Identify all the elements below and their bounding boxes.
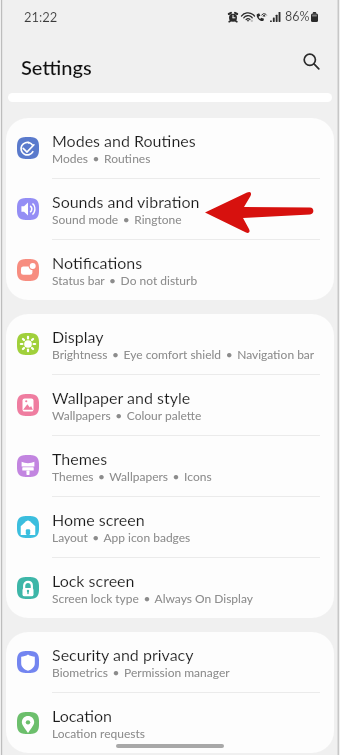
button[interactable]: Lock screen: [6, 558, 334, 618]
staticText: Lock screen: [52, 571, 135, 590]
button[interactable]: Wallpaper and style: [6, 375, 334, 435]
button[interactable]: Themes: [6, 436, 334, 496]
staticText: Location requests: [52, 726, 146, 740]
staticText: Home screen: [52, 510, 145, 529]
staticText: Layout • App icon badges: [52, 530, 191, 544]
staticText: Sounds and vibration: [52, 192, 200, 211]
staticText: Modes and Routines: [52, 131, 196, 150]
button[interactable]: Home screen: [6, 497, 334, 557]
staticText: Wallpapers • Colour palette: [52, 408, 202, 422]
staticText: Settings: [21, 55, 92, 79]
staticText: Themes • Wallpapers • Icons: [52, 469, 212, 483]
button[interactable]: Security and privacy: [6, 632, 334, 692]
button[interactable]: Display: [6, 314, 334, 374]
button[interactable]: Modes and Routines: [6, 118, 334, 178]
button[interactable]: Location: [6, 693, 334, 753]
staticText: Brightness • Eye comfort shield • Naviga…: [52, 347, 315, 361]
staticText: Screen lock type • Always On Display: [52, 591, 253, 605]
staticText: Status bar • Do not disturb: [52, 273, 198, 287]
staticText: Modes • Routines: [52, 151, 151, 165]
staticText: Location: [52, 706, 113, 725]
button[interactable]: Search: [294, 44, 328, 78]
staticText: Sound mode • Ringtone: [52, 212, 182, 226]
button[interactable]: Sounds and vibration: [6, 179, 334, 239]
staticText: Notifications: [52, 253, 143, 272]
staticText: Display: [52, 327, 104, 346]
staticText: Themes: [52, 449, 108, 468]
staticText: Biometrics • Permission manager: [52, 665, 230, 679]
staticText: 86%: [285, 9, 310, 24]
staticText: Wallpaper and style: [52, 388, 191, 407]
staticText: Security and privacy: [52, 645, 194, 664]
staticText: 21:22: [24, 9, 58, 25]
button[interactable]: Notifications: [6, 240, 334, 300]
